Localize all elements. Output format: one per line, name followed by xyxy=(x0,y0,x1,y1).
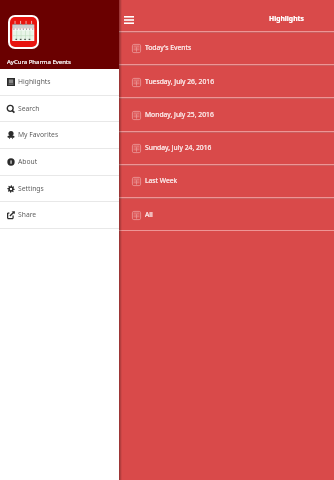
button[interactable]: Search xyxy=(0,96,119,123)
staticText: Monday, July 25, 2016 xyxy=(145,110,214,119)
button[interactable]: Today's Events xyxy=(0,32,334,64)
button[interactable]: My Favorites xyxy=(0,122,119,149)
staticText: Highlights xyxy=(269,14,304,23)
staticText: Share xyxy=(18,210,37,219)
button[interactable]: Sunday, July 24, 2016 xyxy=(0,132,334,164)
button[interactable]: Settings xyxy=(0,176,119,203)
button[interactable]: Open navigation drawer xyxy=(120,11,138,29)
staticText: My Favorites xyxy=(18,130,59,139)
button[interactable]: Last Week xyxy=(0,165,334,197)
staticText: Today's Events xyxy=(145,43,192,52)
button[interactable]: Monday, July 25, 2016 xyxy=(0,99,334,131)
staticText: Tuesday, July 26, 2016 xyxy=(145,77,214,86)
staticText: Highlights xyxy=(18,77,51,86)
staticText: Settings xyxy=(18,184,44,193)
staticText: About xyxy=(18,157,38,166)
button[interactable]: All xyxy=(0,199,334,231)
staticText: Sunday, July 24, 2016 xyxy=(145,143,212,152)
staticText: All xyxy=(145,210,153,219)
staticText: Last Week xyxy=(145,176,178,185)
button[interactable]: Tuesday, July 26, 2016 xyxy=(0,66,334,98)
staticText: Search xyxy=(18,104,40,113)
button[interactable]: Share xyxy=(0,202,119,229)
button[interactable]: Highlights xyxy=(0,69,119,96)
button[interactable]: About xyxy=(0,149,119,176)
staticText: AyCura Pharma Events xyxy=(7,58,71,66)
